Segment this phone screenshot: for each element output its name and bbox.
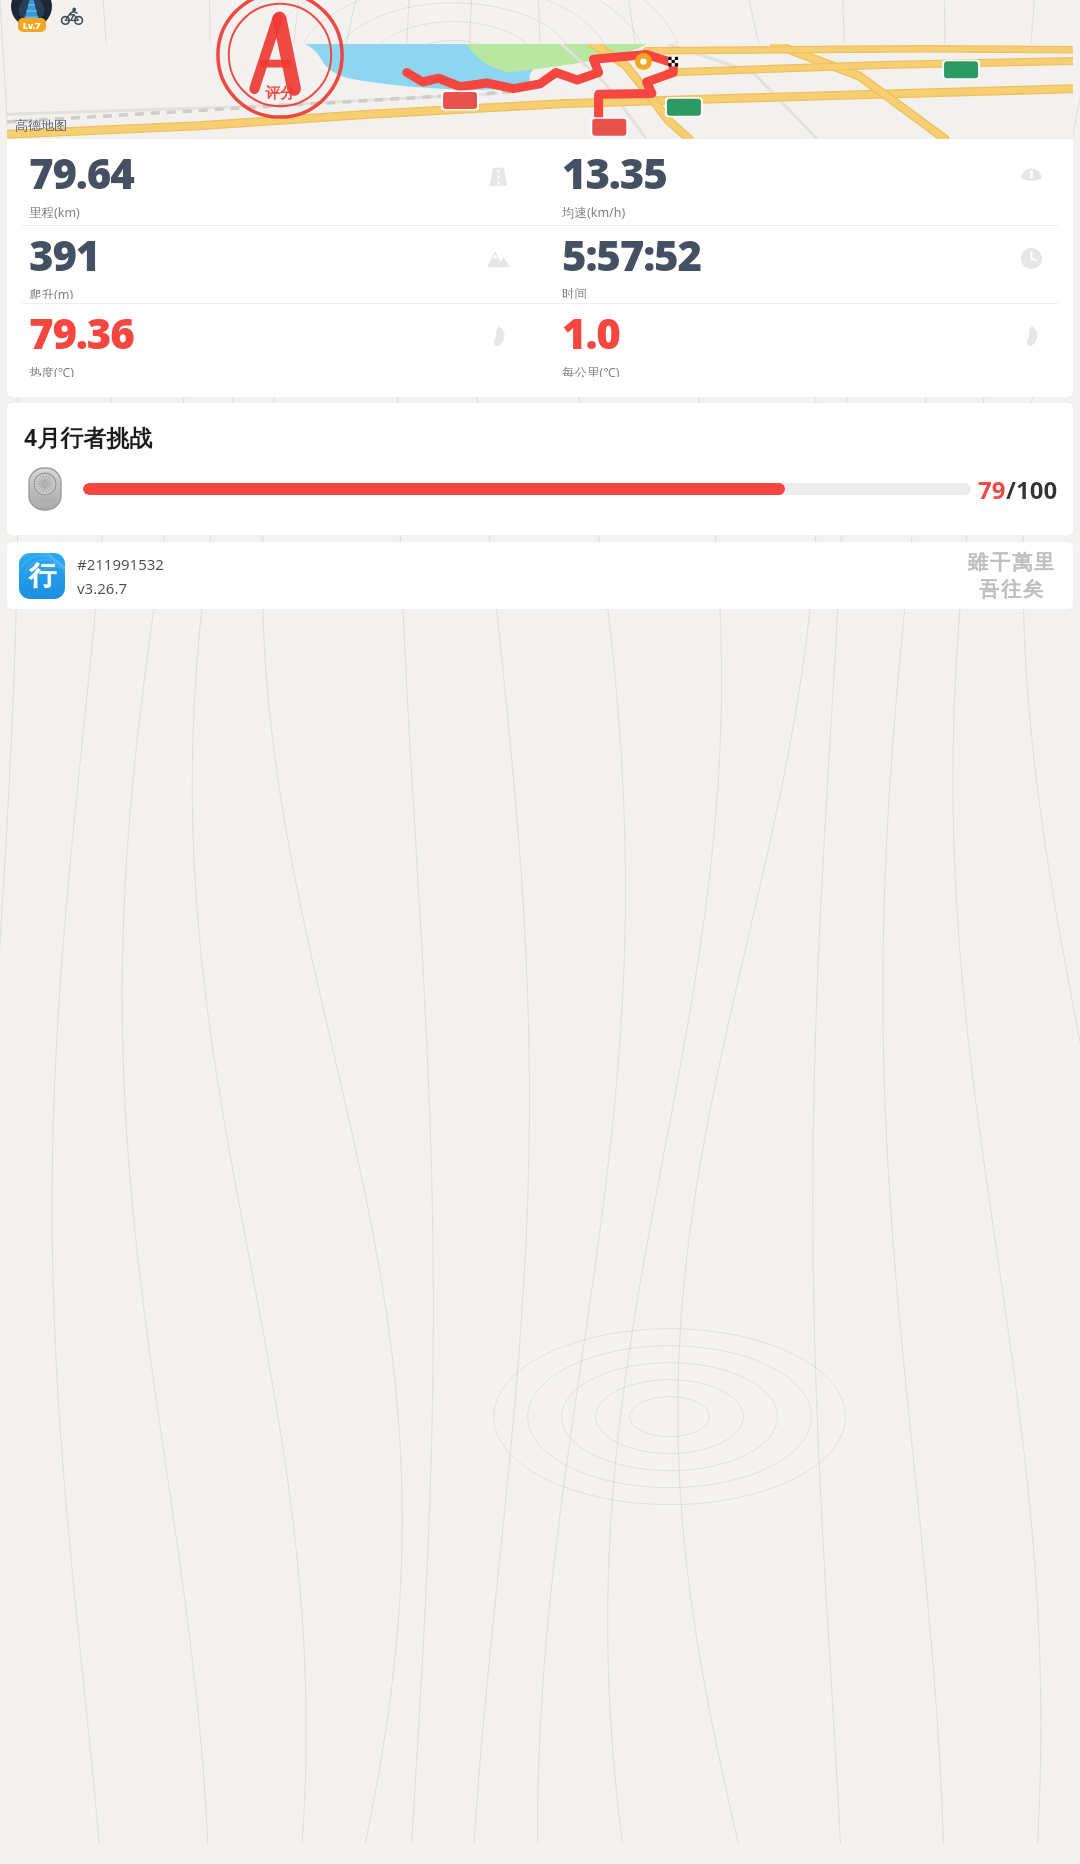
staticText: 爬升(m) — [29, 286, 74, 299]
button[interactable]: Route map — [7, 44, 1073, 139]
staticText: 79.64 — [29, 144, 134, 201]
staticText: 5:57:52 — [562, 226, 701, 283]
button[interactable]: 4月行者挑战 — [7, 403, 1073, 535]
button[interactable]: Cycling — [61, 5, 83, 27]
staticText: 行 — [29, 559, 56, 593]
staticText: 时间 — [562, 286, 587, 299]
staticText: 1.0 — [562, 304, 620, 361]
staticText: 每公里(℃) — [562, 364, 620, 377]
staticText: 高德地图 — [15, 117, 67, 133]
staticText: Lv.7 — [23, 19, 41, 31]
staticText: 评分 — [265, 84, 295, 103]
button[interactable]: Rating A — [216, 0, 344, 119]
staticText: 79.36 — [29, 304, 134, 361]
staticText: 雖干萬里 — [967, 550, 1055, 575]
staticText: /100 — [1006, 473, 1058, 506]
button[interactable]: 1.0 — [540, 304, 1073, 381]
button[interactable]: 行 — [7, 542, 1073, 609]
button[interactable]: 391 — [7, 226, 540, 303]
button[interactable]: 5:57:52 — [540, 226, 1073, 303]
staticText: 吾往矣 — [978, 577, 1044, 602]
staticText: 13.35 — [562, 144, 667, 201]
staticText: 391 — [29, 226, 100, 283]
staticText: 热度(℃) — [29, 364, 74, 377]
staticText: v3.26.7 — [77, 578, 127, 598]
staticText: 4月行者挑战 — [24, 421, 153, 452]
staticText: #211991532 — [77, 554, 164, 574]
button[interactable]: Profile — [11, 0, 53, 27]
button[interactable]: 79.36 — [7, 304, 540, 381]
staticText: 里程(km) — [29, 204, 80, 221]
staticText: 均速(km/h) — [562, 204, 626, 221]
button[interactable]: 13.35 — [540, 139, 1073, 225]
staticText: 79 — [978, 473, 1006, 506]
button[interactable]: 79.64 — [7, 139, 540, 225]
